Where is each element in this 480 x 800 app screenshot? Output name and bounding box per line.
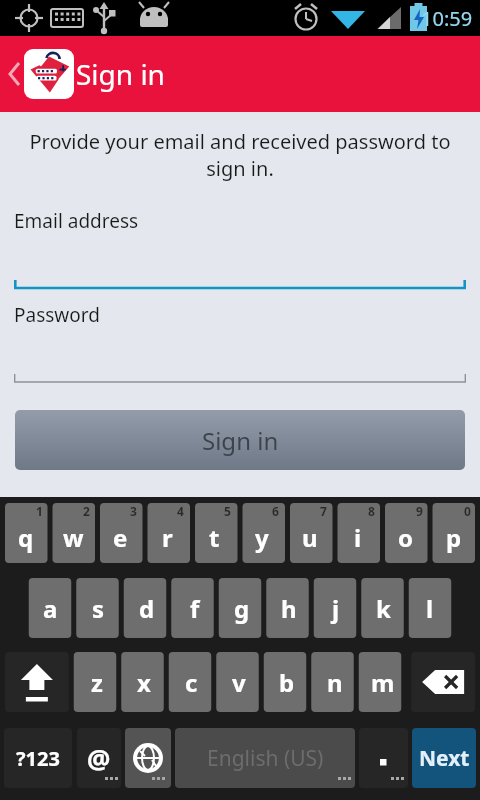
staticText: @: [87, 741, 111, 776]
button[interactable]: k: [362, 578, 404, 638]
button[interactable]: l: [409, 578, 451, 638]
staticText: 9: [416, 503, 423, 519]
staticText: 8: [368, 503, 375, 519]
staticText: y: [255, 521, 269, 554]
button[interactable]: v: [217, 652, 260, 712]
button[interactable]: English (US): [175, 728, 355, 788]
button[interactable]: Change keyboard language: [125, 728, 171, 788]
staticText: d: [139, 592, 155, 625]
button[interactable]: 3: [99, 503, 141, 563]
staticText: t: [209, 521, 220, 554]
staticText: f: [190, 592, 200, 625]
button[interactable]: s: [77, 578, 120, 638]
staticText: p: [446, 521, 462, 554]
button[interactable]: 9: [384, 503, 427, 563]
button[interactable]: 8: [336, 503, 379, 563]
button[interactable]: g: [221, 578, 263, 638]
staticText: Sign in: [76, 55, 165, 93]
button[interactable]: f: [173, 578, 216, 638]
staticText: l: [426, 592, 434, 625]
button[interactable]: n: [313, 652, 356, 712]
staticText: 0: [464, 503, 471, 519]
button[interactable]: j: [315, 578, 357, 638]
staticText: w: [63, 521, 84, 554]
button[interactable]: Sign in: [15, 410, 465, 470]
staticText: c: [185, 666, 198, 699]
staticText: o: [398, 521, 413, 554]
staticText: x: [137, 666, 151, 699]
staticText: e: [113, 521, 128, 554]
staticText: English (US): [207, 744, 324, 773]
button[interactable]: b: [265, 652, 308, 712]
button[interactable]: Period: [359, 728, 408, 788]
button[interactable]: c: [170, 652, 212, 712]
button[interactable]: Next: [412, 728, 476, 788]
staticText: q: [18, 521, 34, 554]
staticText: m: [371, 666, 395, 699]
button[interactable]: Shift: [5, 652, 71, 712]
staticText: Provide your email and received password…: [26, 128, 454, 182]
button[interactable]: 7: [288, 503, 331, 563]
staticText: n: [327, 666, 343, 699]
button[interactable]: 5: [193, 503, 235, 563]
staticText: Email address: [14, 208, 139, 234]
button[interactable]: 2: [52, 503, 94, 563]
staticText: Password: [14, 302, 100, 328]
button[interactable]: 0: [432, 503, 475, 563]
staticText: Sign in: [202, 424, 279, 457]
staticText: ?123: [16, 745, 60, 772]
button[interactable]: 1: [5, 503, 47, 563]
staticText: 7: [320, 503, 327, 519]
button[interactable]: d: [125, 578, 168, 638]
button[interactable]: h: [268, 578, 310, 638]
button[interactable]: [14, 328, 466, 390]
staticText: r: [162, 521, 173, 554]
staticText: u: [302, 521, 318, 554]
button[interactable]: [14, 234, 466, 296]
button[interactable]: 6: [240, 503, 283, 563]
staticText: j: [332, 592, 340, 625]
staticText: z: [91, 666, 103, 699]
staticText: s: [92, 592, 105, 625]
staticText: 5: [224, 503, 231, 519]
staticText: 4: [177, 503, 184, 519]
staticText: a: [43, 592, 58, 625]
button[interactable]: x: [123, 652, 165, 712]
staticText: i: [354, 521, 362, 554]
staticText: 3: [130, 503, 137, 519]
staticText: Next: [419, 744, 470, 773]
staticText: 2: [83, 503, 90, 519]
button[interactable]: @: [77, 728, 121, 788]
staticText: 10:59: [421, 5, 473, 32]
staticText: v: [232, 666, 246, 699]
button[interactable]: Back: [0, 36, 80, 112]
button[interactable]: z: [76, 652, 118, 712]
button[interactable]: ?123: [4, 728, 72, 788]
button[interactable]: Backspace: [409, 652, 475, 712]
button[interactable]: 4: [146, 503, 188, 563]
staticText: g: [234, 592, 250, 625]
staticText: k: [376, 592, 391, 625]
staticText: 1: [36, 503, 43, 519]
button[interactable]: m: [361, 652, 404, 712]
staticText: h: [281, 592, 297, 625]
staticText: 6: [272, 503, 279, 519]
staticText: b: [279, 666, 295, 699]
button[interactable]: a: [29, 578, 72, 638]
